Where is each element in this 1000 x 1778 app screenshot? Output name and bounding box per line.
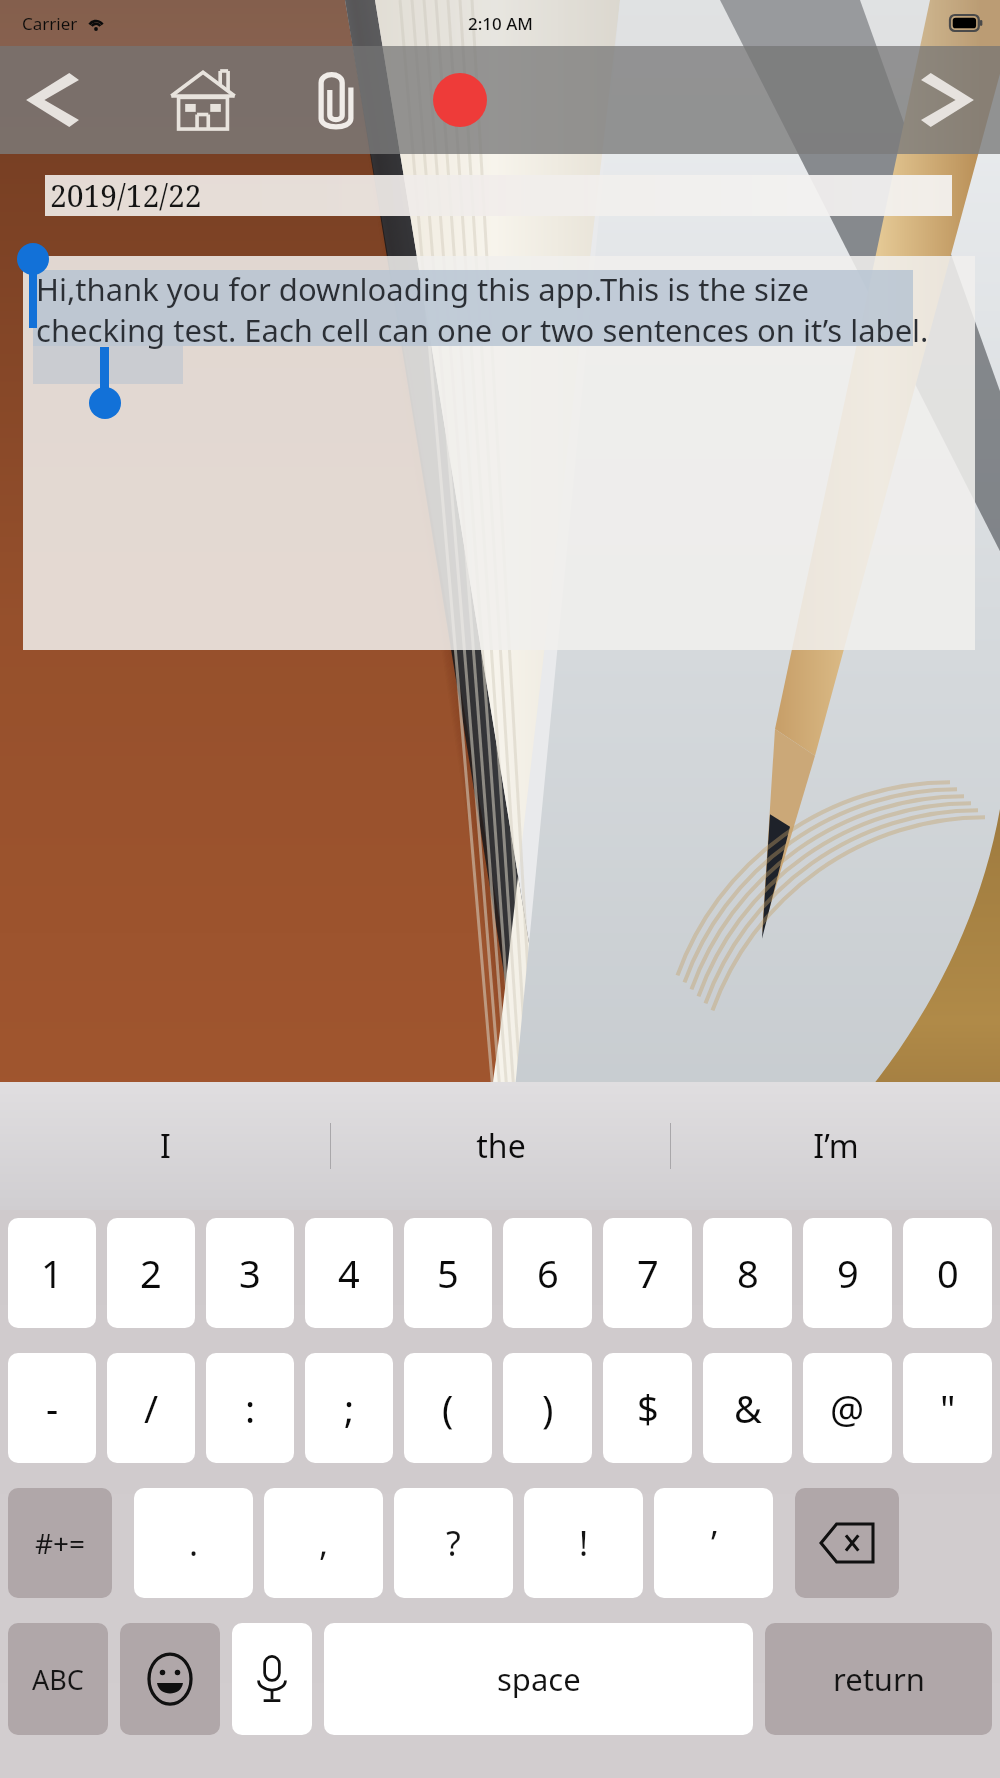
- button[interactable]: the: [331, 1082, 670, 1210]
- staticText: 0: [937, 1247, 959, 1299]
- staticText: 9: [837, 1247, 859, 1299]
- staticText: 5: [437, 1247, 459, 1299]
- button[interactable]: 1: [8, 1218, 96, 1328]
- button[interactable]: &: [703, 1353, 792, 1463]
- staticText: &: [734, 1382, 762, 1434]
- button[interactable]: 3: [206, 1218, 294, 1328]
- button[interactable]: space: [324, 1623, 753, 1735]
- button[interactable]: 2019/12/22: [45, 175, 952, 216]
- button[interactable]: return: [765, 1623, 992, 1735]
- button[interactable]: 7: [603, 1218, 692, 1328]
- button[interactable]: Back: [14, 62, 90, 138]
- staticText: ,: [319, 1520, 329, 1566]
- button[interactable]: I’m: [671, 1082, 1000, 1210]
- button[interactable]: 6: [503, 1218, 592, 1328]
- staticText: 2019/12/22: [50, 175, 202, 216]
- button[interactable]: Forward: [910, 62, 986, 138]
- button[interactable]: Home: [160, 57, 246, 143]
- button[interactable]: Backspace: [795, 1488, 899, 1598]
- button[interactable]: 9: [803, 1218, 892, 1328]
- staticText: :: [245, 1382, 256, 1434]
- button[interactable]: Dictation: [232, 1623, 312, 1735]
- staticText: the: [476, 1124, 526, 1168]
- button[interactable]: 8: [703, 1218, 792, 1328]
- button[interactable]: ABC: [8, 1623, 108, 1735]
- staticText: -: [46, 1382, 59, 1434]
- staticText: 3: [239, 1247, 261, 1299]
- button[interactable]: @: [803, 1353, 892, 1463]
- staticText: $: [637, 1382, 659, 1434]
- button[interactable]: !: [524, 1488, 643, 1598]
- staticText: 1: [41, 1247, 63, 1299]
- button[interactable]: :: [206, 1353, 294, 1463]
- staticText: 2: [140, 1247, 162, 1299]
- staticText: ’: [711, 1520, 717, 1566]
- button[interactable]: .: [134, 1488, 253, 1598]
- button[interactable]: 0: [903, 1218, 992, 1328]
- staticText: .: [189, 1520, 199, 1566]
- staticText: return: [833, 1658, 925, 1700]
- staticText: 6: [537, 1247, 559, 1299]
- button[interactable]: #+=: [8, 1488, 112, 1598]
- button[interactable]: ?: [394, 1488, 513, 1598]
- button[interactable]: ): [503, 1353, 592, 1463]
- staticText: I’m: [813, 1124, 859, 1168]
- button[interactable]: I: [0, 1082, 330, 1210]
- button[interactable]: 2: [107, 1218, 195, 1328]
- button[interactable]: Hi,thank you for downloading this app.Th…: [23, 256, 975, 650]
- staticText: 4: [338, 1247, 360, 1299]
- staticText: Carrier: [22, 12, 78, 35]
- staticText: Hi,thank you for downloading this app.Th…: [36, 268, 941, 351]
- staticText: #+=: [35, 1524, 86, 1562]
- staticText: ): [542, 1382, 554, 1434]
- button[interactable]: ;: [305, 1353, 393, 1463]
- button[interactable]: ": [903, 1353, 992, 1463]
- button[interactable]: /: [107, 1353, 195, 1463]
- staticText: ?: [446, 1520, 461, 1566]
- staticText: 7: [637, 1247, 659, 1299]
- button[interactable]: ,: [264, 1488, 383, 1598]
- button[interactable]: (: [404, 1353, 492, 1463]
- staticText: space: [497, 1658, 581, 1700]
- button[interactable]: Attach: [296, 60, 376, 140]
- staticText: /: [144, 1382, 159, 1434]
- staticText: 2:10 AM: [468, 12, 533, 35]
- button[interactable]: -: [8, 1353, 96, 1463]
- staticText: (: [442, 1382, 454, 1434]
- button[interactable]: $: [603, 1353, 692, 1463]
- staticText: ABC: [32, 1661, 84, 1698]
- button[interactable]: ’: [654, 1488, 773, 1598]
- staticText: ;: [344, 1382, 355, 1434]
- button[interactable]: 5: [404, 1218, 492, 1328]
- staticText: 8: [737, 1247, 759, 1299]
- button[interactable]: 4: [305, 1218, 393, 1328]
- staticText: !: [579, 1520, 589, 1566]
- button[interactable]: Emoji: [120, 1623, 220, 1735]
- staticText: I: [160, 1124, 171, 1168]
- staticText: @: [830, 1382, 865, 1434]
- button[interactable]: Record: [420, 60, 500, 140]
- staticText: ": [940, 1382, 956, 1434]
